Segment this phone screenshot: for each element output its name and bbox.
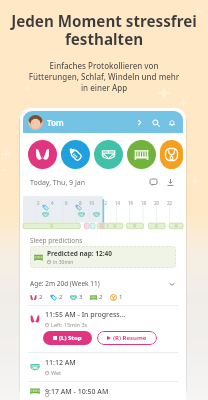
- staticText: Predicted nap: 12:40: [47, 249, 113, 258]
- button[interactable]: Log diaper: [94, 140, 123, 169]
- button[interactable]: Notes: [148, 177, 159, 188]
- staticText: Left: 15min 3s: [51, 321, 88, 328]
- staticText: 16: [128, 200, 134, 206]
- button[interactable]: (R) Resume: [97, 331, 157, 345]
- button[interactable]: Predicted nap: 12:40: [34, 249, 172, 265]
- staticText: in 30min: [53, 259, 74, 265]
- button[interactable]: Log pumping: [160, 140, 183, 169]
- button[interactable]: Log sleep: [127, 140, 156, 169]
- button[interactable]: (L) Stop: [43, 331, 92, 345]
- staticText: 11:55 AM - In progress...: [45, 310, 126, 320]
- staticText: 14: [115, 200, 121, 206]
- staticText: Age: 2m 20d (Week 11): [30, 279, 100, 288]
- staticText: 2: [99, 293, 103, 301]
- staticText: 1: [119, 293, 123, 301]
- staticText: 2: [59, 293, 63, 301]
- button[interactable]: Notifications: [165, 116, 178, 129]
- button[interactable]: Log nursing: [28, 140, 57, 169]
- button[interactable]: Switch child: [133, 116, 146, 129]
- button[interactable]: 11:12 AM: [30, 358, 176, 376]
- staticText: (L) Stop: [59, 334, 82, 342]
- staticText: 20: [154, 200, 160, 206]
- staticText: 3: [79, 293, 83, 301]
- button[interactable]: Log bottle: [61, 140, 90, 169]
- staticText: 2: [37, 200, 40, 206]
- staticText: Einfaches Protokollieren von Fütterungen…: [0, 60, 208, 93]
- button[interactable]: Download: [165, 177, 176, 188]
- staticText: Jeden Moment stressfrei festhalten: [0, 11, 208, 50]
- staticText: 22: [167, 200, 173, 206]
- button[interactable]: Search: [149, 116, 162, 129]
- staticText: Today, Thu, 9 Jan: [30, 178, 86, 188]
- staticText: Wet: [51, 369, 62, 376]
- staticText: Tom: [47, 117, 64, 128]
- staticText: 12: [102, 200, 108, 206]
- button[interactable]: 11:55 AM - In progress...: [30, 310, 176, 345]
- staticText: 6: [65, 200, 68, 206]
- staticText: Sleep predictions: [30, 236, 83, 245]
- button[interactable]: Age: 2m 20d (Week 11): [30, 279, 176, 288]
- staticText: 2: [39, 293, 43, 301]
- staticText: 8: [79, 200, 82, 206]
- staticText: (R) Resume: [113, 334, 147, 342]
- staticText: 4: [51, 200, 54, 206]
- button[interactable]: 9:17 AM - 10:50 AM: [30, 387, 176, 395]
- staticText: 11:12 AM: [45, 358, 76, 368]
- staticText: 18: [141, 200, 147, 206]
- staticText: 9:17 AM - 10:50 AM: [45, 387, 109, 395]
- staticText: 10: [89, 200, 95, 206]
